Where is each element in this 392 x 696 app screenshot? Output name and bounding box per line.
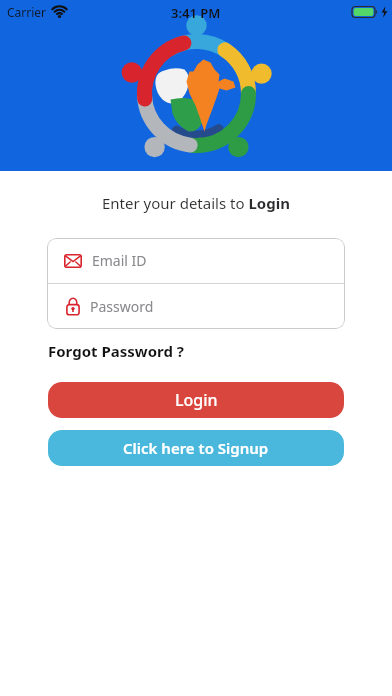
button[interactable]: Email ID [47,238,345,283]
staticText: Click here to Signup [123,438,269,458]
button[interactable]: Password [47,284,345,329]
staticText: Login [175,389,218,411]
staticText: 3:41 PM [171,4,221,22]
staticText: Enter your details to Login [102,193,290,213]
staticText: Carrier [7,4,47,20]
button[interactable]: Forgot Password ? [48,341,184,361]
button[interactable]: Login [48,382,344,418]
staticText: Email ID [92,251,147,270]
button[interactable]: Click here to Signup [48,430,344,466]
staticText: Password [90,297,154,316]
